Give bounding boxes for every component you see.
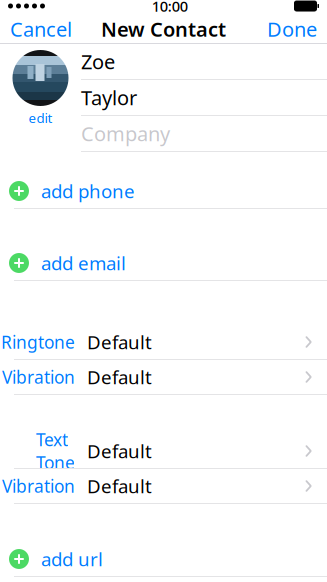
staticText: Cancel [10,16,72,42]
button[interactable]: Done [257,15,327,43]
staticText: 10:00 [152,0,188,16]
button[interactable]: Ringtone [0,325,327,360]
button[interactable]: add email [0,246,327,281]
staticText: Company [81,120,170,147]
staticText: Default [87,330,152,354]
button[interactable]: Vibration [0,360,327,395]
button[interactable]: Vibration [0,469,327,504]
staticText: edit [28,109,52,127]
staticText: Default [87,365,152,389]
staticText: Vibration [2,365,75,388]
button[interactable]: edit [12,50,68,127]
button[interactable]: Cancel [0,15,82,43]
button[interactable]: add url [0,542,327,577]
staticText: Vibration [2,474,75,497]
button[interactable]: add phone [0,174,327,209]
staticText: Default [87,439,152,463]
staticText: add phone [41,179,135,203]
staticText: Ringtone [1,330,75,353]
staticText: Zoe [81,48,115,75]
staticText: Taylor [81,84,137,111]
staticText: Default [87,474,152,498]
staticText: Done [267,16,317,42]
staticText: add url [41,547,103,571]
staticText: add email [41,251,126,275]
staticText: Text Tone [36,428,75,474]
button[interactable]: Text Tone [0,434,327,469]
staticText: New Contact [101,16,226,42]
